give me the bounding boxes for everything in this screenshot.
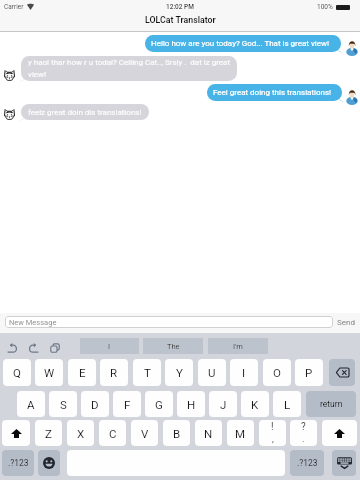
staticText: S bbox=[60, 398, 67, 411]
staticText: ? bbox=[301, 421, 306, 433]
button[interactable]: U bbox=[198, 359, 226, 386]
button[interactable]: N bbox=[195, 420, 222, 446]
button[interactable]: E bbox=[68, 359, 96, 386]
button[interactable]: Paste bbox=[50, 343, 60, 353]
button[interactable]: R bbox=[100, 359, 128, 386]
staticText: A bbox=[27, 398, 35, 411]
staticText: P bbox=[305, 366, 313, 379]
button[interactable]: Y bbox=[165, 359, 193, 386]
staticText: LOLCat Translator bbox=[145, 15, 216, 25]
button[interactable]: Hide keyboard bbox=[332, 450, 356, 476]
button[interactable]: Q bbox=[3, 359, 31, 386]
staticText: New Message bbox=[9, 318, 57, 327]
staticText: N bbox=[204, 427, 213, 440]
staticText: R bbox=[110, 366, 118, 379]
button[interactable]: Undo bbox=[7, 343, 17, 353]
staticText: L bbox=[284, 398, 291, 411]
staticText: U bbox=[208, 366, 216, 379]
staticText: Feel great doing this translations! bbox=[213, 88, 332, 97]
staticText: Send bbox=[337, 318, 355, 327]
button[interactable]: K bbox=[241, 391, 269, 417]
staticText: C bbox=[109, 427, 117, 440]
button[interactable]: ! bbox=[259, 420, 286, 446]
staticText: X bbox=[77, 427, 85, 440]
staticText: feelz great doin dis translations! bbox=[28, 108, 142, 117]
button[interactable]: Shift bbox=[322, 420, 357, 446]
button[interactable]: New Message bbox=[5, 316, 333, 328]
staticText: G bbox=[155, 398, 163, 411]
staticText: F bbox=[124, 398, 131, 411]
staticText: K bbox=[251, 398, 259, 411]
staticText: B bbox=[173, 427, 181, 440]
staticText: V bbox=[141, 427, 149, 440]
staticText: D bbox=[91, 398, 99, 411]
button[interactable]: T bbox=[133, 359, 161, 386]
staticText: Z bbox=[45, 427, 52, 440]
button[interactable]: C bbox=[99, 420, 126, 446]
staticText: ! bbox=[271, 421, 274, 433]
staticText: E bbox=[79, 366, 86, 379]
button[interactable]: V bbox=[131, 420, 158, 446]
staticText: O bbox=[273, 366, 281, 379]
button[interactable]: F bbox=[113, 391, 141, 417]
other: LOLCat avatar bbox=[4, 109, 15, 120]
button[interactable]: B bbox=[163, 420, 190, 446]
staticText: H bbox=[187, 398, 196, 411]
button[interactable]: P bbox=[295, 359, 323, 386]
staticText: Hello how are you today? God... That is … bbox=[151, 39, 330, 48]
staticText: I bbox=[242, 366, 246, 379]
staticText: . bbox=[302, 434, 305, 445]
button[interactable]: I bbox=[80, 338, 139, 354]
button[interactable]: O bbox=[263, 359, 291, 386]
staticText: Q bbox=[13, 366, 21, 379]
staticText: .?123 bbox=[8, 458, 29, 468]
staticText: y haol thar how r u todai? Celling Cat..… bbox=[28, 58, 232, 79]
other: User avatar bbox=[346, 88, 358, 102]
button[interactable]: The bbox=[143, 338, 203, 354]
button[interactable]: return bbox=[306, 391, 356, 417]
other: LOLCat avatar bbox=[4, 70, 15, 81]
button[interactable]: .?123 bbox=[290, 450, 324, 476]
button[interactable]: D bbox=[81, 391, 109, 417]
button[interactable]: .?123 bbox=[2, 450, 34, 476]
staticText: , bbox=[272, 434, 274, 445]
button[interactable]: J bbox=[209, 391, 237, 417]
button[interactable]: G bbox=[145, 391, 173, 417]
button[interactable]: M bbox=[227, 420, 254, 446]
button[interactable]: H bbox=[177, 391, 205, 417]
button[interactable]: W bbox=[35, 359, 63, 386]
button[interactable]: Backspace bbox=[329, 359, 355, 386]
button[interactable]: Z bbox=[35, 420, 62, 446]
staticText: I'm bbox=[233, 342, 243, 351]
staticText: T bbox=[144, 366, 151, 379]
staticText: M bbox=[235, 427, 246, 440]
other: User avatar bbox=[346, 39, 358, 53]
staticText: 100% bbox=[317, 3, 333, 11]
button[interactable]: X bbox=[67, 420, 94, 446]
button[interactable]: ? bbox=[290, 420, 317, 446]
button[interactable]: Shift bbox=[2, 420, 30, 446]
staticText: I bbox=[108, 342, 111, 351]
staticText: W bbox=[44, 366, 55, 379]
staticText: J bbox=[220, 398, 227, 411]
button[interactable]: L bbox=[273, 391, 301, 417]
button[interactable]: I'm bbox=[208, 338, 268, 354]
staticText: The bbox=[167, 342, 180, 351]
staticText: .?123 bbox=[297, 458, 318, 468]
button[interactable]: Emoji bbox=[38, 450, 60, 476]
staticText: Carrier bbox=[4, 3, 24, 11]
button[interactable]: Redo bbox=[29, 343, 39, 353]
button[interactable]: Send bbox=[335, 315, 357, 330]
button[interactable]: I bbox=[230, 359, 258, 386]
staticText: return bbox=[320, 399, 343, 409]
button[interactable]: A bbox=[17, 391, 45, 417]
staticText: 12:02 PM bbox=[166, 3, 194, 11]
button[interactable]: S bbox=[49, 391, 77, 417]
staticText: Y bbox=[176, 366, 183, 379]
